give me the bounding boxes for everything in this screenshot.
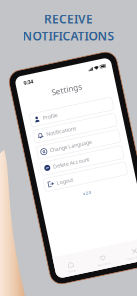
staticText: Logout <box>54 173 71 180</box>
staticText: Settings <box>68 82 99 93</box>
staticText: NOTIFICATIONS <box>22 28 114 44</box>
staticText: v 2.3 <box>77 190 85 196</box>
staticText: 9:34 <box>42 69 52 76</box>
button[interactable]: Favourites <box>67 257 100 268</box>
staticText: Home <box>47 265 55 268</box>
staticText: Profile <box>54 107 69 114</box>
button[interactable]: Order Equip. <box>100 257 132 268</box>
button[interactable]: Home <box>34 257 67 268</box>
staticText: Delete Account <box>54 157 91 164</box>
button[interactable]: Notifications <box>41 121 125 134</box>
staticText: Change Language <box>54 140 97 147</box>
button[interactable]: Profile <box>41 104 125 117</box>
staticText: Notifications <box>54 124 85 131</box>
button[interactable]: Change Language <box>41 137 125 150</box>
button[interactable]: Delete Account <box>41 154 125 167</box>
staticText: Order Equip. <box>107 265 125 268</box>
button[interactable]: Logout <box>41 170 125 183</box>
staticText: RECEIVE <box>44 11 93 27</box>
